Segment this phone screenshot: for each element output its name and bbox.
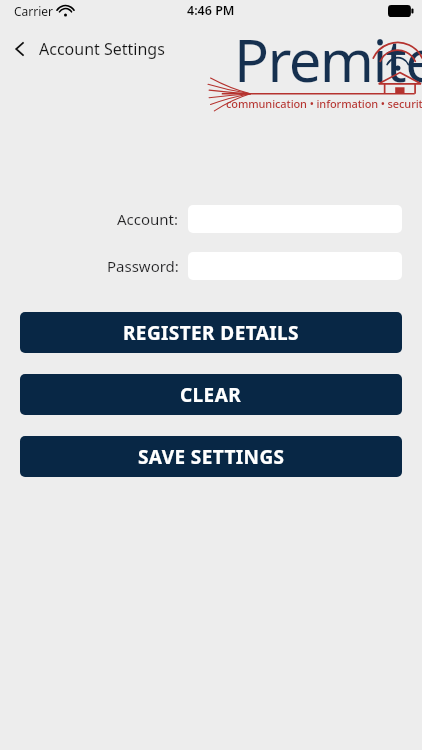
button[interactable]: Back [0, 34, 175, 64]
staticText: Password: [107, 256, 179, 276]
staticText: Premitel [234, 20, 422, 110]
button[interactable]: CLEAR [20, 374, 402, 415]
staticText: Carrier [14, 3, 54, 19]
staticText: REGISTER DETAILS [123, 320, 299, 346]
other: Back [14, 40, 26, 58]
staticText: 4:46 PM [187, 2, 235, 19]
staticText: Account: [117, 209, 179, 229]
button[interactable]: SAVE SETTINGS [20, 436, 402, 477]
staticText: CLEAR [180, 382, 242, 408]
staticText: Account Settings [39, 38, 165, 60]
staticText: communication • information • security [226, 96, 422, 111]
staticText: SAVE SETTINGS [138, 444, 285, 470]
button[interactable]: REGISTER DETAILS [20, 312, 402, 353]
